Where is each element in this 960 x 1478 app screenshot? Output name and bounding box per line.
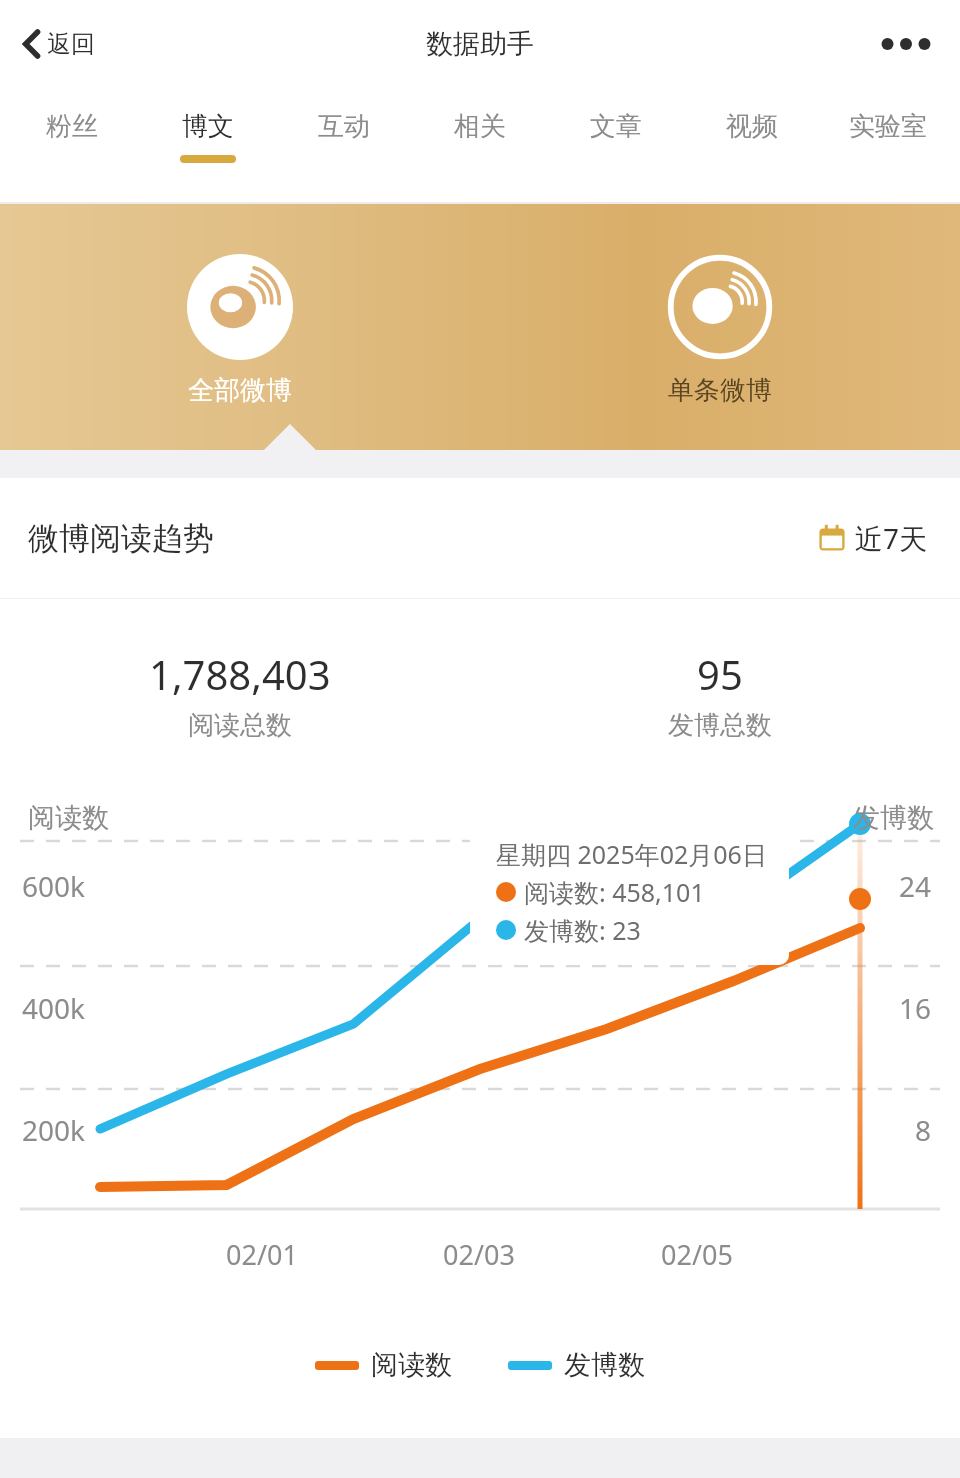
- staticText: 单条微博: [668, 374, 772, 407]
- staticText: 发博总数: [668, 709, 772, 742]
- button[interactable]: 返回: [14, 23, 103, 65]
- staticText: 发博数: [853, 801, 934, 835]
- button[interactable]: 视频: [684, 88, 820, 204]
- staticText: 互动: [318, 110, 370, 143]
- staticText: 阅读数: 458,101: [524, 875, 705, 909]
- staticText: 视频: [726, 110, 778, 143]
- button[interactable]: 发博数: [498, 1348, 655, 1382]
- staticText: 阅读总数: [188, 709, 292, 742]
- other: Single Weibo: [667, 254, 773, 360]
- staticText: 实验室: [849, 110, 927, 143]
- staticText: 全部微博: [188, 374, 292, 407]
- button[interactable]: 近7天: [811, 513, 934, 563]
- staticText: 02/05: [661, 1236, 733, 1273]
- button[interactable]: All Weibo: [0, 204, 480, 450]
- button[interactable]: 实验室: [820, 88, 956, 204]
- staticText: 16: [899, 989, 932, 1027]
- staticText: 粉丝: [46, 110, 98, 143]
- button[interactable]: 1,788,403: [0, 599, 480, 789]
- button[interactable]: 阅读数: [305, 1348, 462, 1382]
- staticText: 近7天: [855, 519, 928, 557]
- button[interactable]: 95: [480, 599, 960, 789]
- button[interactable]: 相关: [412, 88, 548, 204]
- button[interactable]: 博文: [140, 88, 276, 204]
- staticText: 02/03: [443, 1236, 515, 1273]
- staticText: 400k: [22, 989, 86, 1027]
- other: All Weibo: [187, 254, 293, 360]
- staticText: 阅读数: [371, 1348, 452, 1382]
- staticText: 8: [915, 1111, 932, 1149]
- staticText: 1,788,403: [149, 647, 331, 701]
- staticText: 数据助手: [426, 27, 534, 61]
- button[interactable]: More options: [870, 20, 942, 68]
- staticText: 发博数: 23: [524, 913, 641, 947]
- button[interactable]: 文章: [548, 88, 684, 204]
- staticText: 02/01: [226, 1236, 298, 1273]
- button[interactable]: 互动: [276, 88, 412, 204]
- staticText: 微博阅读趋势: [28, 519, 214, 558]
- staticText: 返回: [47, 29, 95, 59]
- staticText: 博文: [182, 110, 234, 143]
- button[interactable]: 粉丝: [4, 88, 140, 204]
- staticText: 相关: [454, 110, 506, 143]
- staticText: 95: [697, 647, 743, 701]
- staticText: 200k: [22, 1111, 86, 1149]
- staticText: 600k: [22, 867, 86, 905]
- staticText: 星期四 2025年02月06日: [496, 837, 767, 871]
- button[interactable]: Single Weibo: [480, 204, 960, 450]
- staticText: 阅读数: [28, 801, 109, 835]
- staticText: 文章: [590, 110, 642, 143]
- staticText: 发博数: [564, 1348, 645, 1382]
- staticText: 24: [899, 867, 932, 905]
